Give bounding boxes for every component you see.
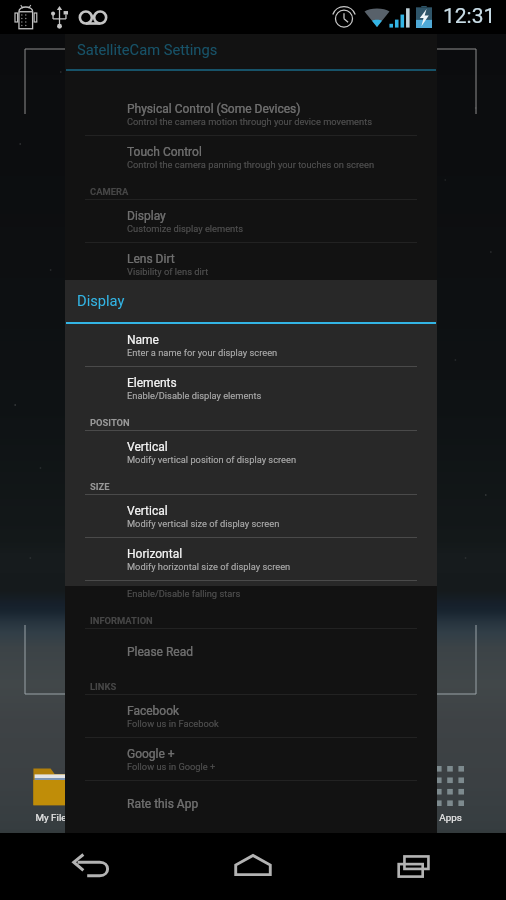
button[interactable]: Lens Dirt: [65, 243, 437, 286]
staticText: Elements: [127, 376, 177, 390]
button[interactable]: Elements: [65, 367, 437, 410]
staticText: Apps: [439, 812, 462, 823]
button[interactable]: Display: [65, 200, 437, 243]
staticText: Speed of the camera rotation: [127, 395, 247, 406]
button[interactable]: Shake: [65, 286, 437, 329]
button[interactable]: Horizontal: [65, 538, 437, 581]
staticText: Rate this App: [127, 797, 199, 811]
staticText: Display: [127, 209, 166, 223]
button[interactable]: POSITON: [65, 410, 437, 431]
staticText: Enable/Disable moving clouds: [127, 438, 253, 449]
staticText: SatelliteCam Settings: [77, 41, 218, 58]
button[interactable]: Facebook: [65, 695, 437, 738]
staticText: SIZE: [90, 481, 110, 492]
staticText: Enable/Disable the moon: [127, 524, 231, 535]
staticText: Please Read: [127, 645, 193, 659]
button[interactable]: LINKS: [65, 674, 437, 695]
staticText: Enter a name for your display screen: [127, 347, 278, 358]
staticText: Modify vertical size of display screen: [127, 518, 280, 529]
staticText: Physical Control (Some Devices): [127, 102, 301, 116]
staticText: Visibility of lens dirt: [127, 266, 209, 277]
staticText: Enable/Disable falling stars: [127, 588, 241, 599]
button[interactable]: Please Read: [65, 629, 437, 674]
staticText: Vertical: [127, 504, 168, 518]
button[interactable]: My Files: [14, 766, 92, 828]
staticText: Follow us in Google +: [127, 761, 216, 772]
button[interactable]: Touch Control: [65, 136, 437, 179]
button[interactable]: Physical Control (Some Devices): [65, 93, 437, 136]
staticText: LINKS: [90, 681, 117, 692]
staticText: Horizontal: [127, 547, 183, 561]
button[interactable]: EFFECTS: [65, 544, 437, 565]
staticText: Speed of the camera zoom: [127, 352, 239, 363]
button[interactable]: Zoom: [65, 329, 437, 372]
staticText: Modify vertical position of display scre…: [127, 454, 297, 465]
staticText: Name: [127, 333, 159, 347]
button[interactable]: Moon: [65, 501, 437, 544]
button[interactable]: Rotation: [65, 372, 437, 415]
button[interactable]: Stars: [65, 565, 437, 608]
staticText: CAMERA: [90, 186, 129, 197]
button[interactable]: Recent apps: [345, 833, 485, 900]
button[interactable]: Home: [183, 833, 323, 900]
staticText: Vertical: [127, 440, 168, 454]
staticText: Control the camera panning through your …: [127, 159, 375, 170]
button[interactable]: Vertical: [65, 495, 437, 538]
button[interactable]: Vertical: [65, 431, 437, 474]
button[interactable]: Google +: [65, 738, 437, 781]
staticText: 12:31: [443, 4, 496, 29]
staticText: POSITON: [90, 417, 130, 428]
button[interactable]: SIZE: [65, 474, 437, 495]
staticText: Touch Control: [127, 145, 202, 159]
button[interactable]: Sun: [65, 458, 437, 501]
button[interactable]: Rate this App: [65, 781, 437, 826]
button[interactable]: Back: [22, 833, 162, 900]
staticText: Moon: [127, 510, 158, 524]
staticText: Google +: [127, 747, 175, 761]
staticText: Customize display elements: [127, 223, 244, 234]
staticText: Enable/Disable display elements: [127, 390, 262, 401]
button[interactable]: INFORMATION: [65, 608, 437, 629]
staticText: My Files: [35, 812, 72, 823]
staticText: Clouds: [127, 424, 165, 438]
staticText: Modify horizontal size of display screen: [127, 561, 291, 572]
button[interactable]: CAMERA: [65, 179, 437, 200]
staticText: INFORMATION: [90, 615, 153, 626]
staticText: Follow us in Facebook: [127, 718, 219, 729]
staticText: EFFECTS: [90, 551, 129, 562]
staticText: Stars: [127, 574, 155, 588]
staticText: Rotation: [127, 381, 173, 395]
staticText: Display: [77, 292, 125, 309]
staticText: Zoom: [127, 338, 159, 352]
staticText: Facebook: [127, 704, 180, 718]
staticText: Control the camera motion through your d…: [127, 116, 373, 127]
button[interactable]: Clouds: [65, 415, 437, 458]
staticText: Lens Dirt: [127, 252, 175, 266]
button[interactable]: Apps: [411, 766, 489, 828]
button[interactable]: Name: [65, 324, 437, 367]
